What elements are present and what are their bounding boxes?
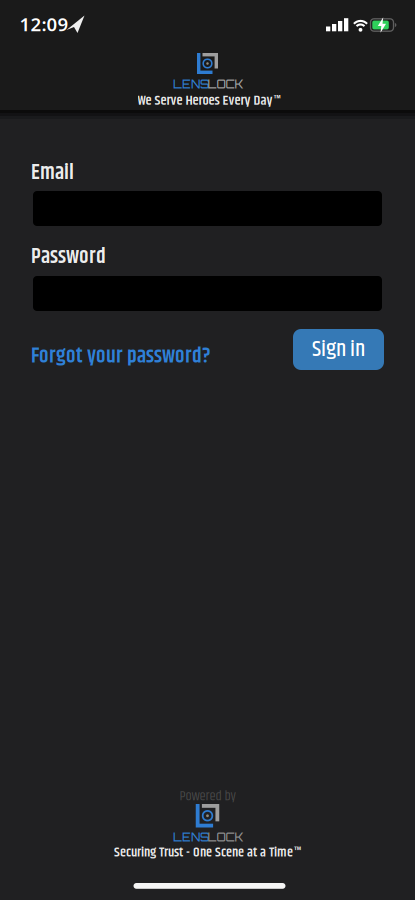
staticText: LENS <box>173 830 209 844</box>
staticText: We Serve Heroes Every Day™ <box>137 90 281 111</box>
staticText: LOCK <box>207 77 243 91</box>
button[interactable]: Forgot your password? <box>31 340 211 373</box>
staticText: Sign in <box>312 332 365 367</box>
staticText: Forgot your password? <box>31 340 211 373</box>
staticText: Securing Trust - One Scene at a Time™ <box>114 842 301 863</box>
staticText: Password <box>31 240 106 273</box>
button[interactable]: Sign in <box>293 329 384 370</box>
staticText: LENS <box>173 77 209 91</box>
staticText: Email <box>31 156 74 189</box>
staticText: LOCK <box>207 830 243 844</box>
staticText: Powered by <box>179 785 235 807</box>
staticText: 12:09 <box>19 11 68 36</box>
